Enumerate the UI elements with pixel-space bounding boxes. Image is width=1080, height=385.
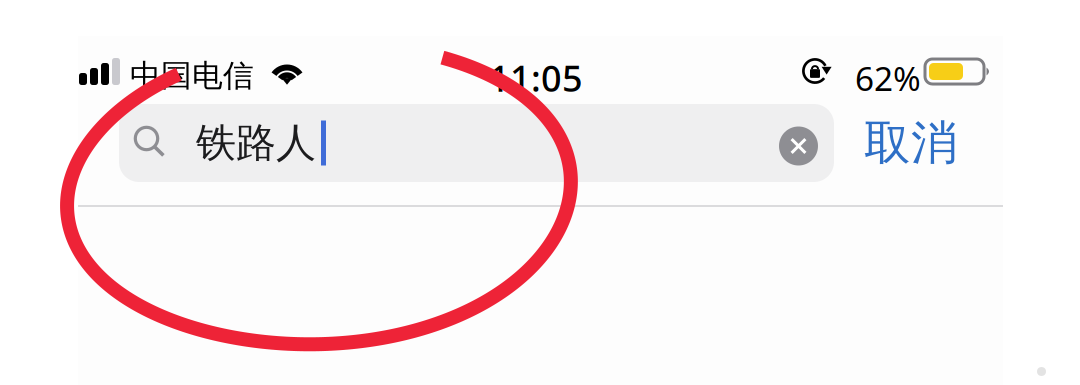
- staticText: 62%: [855, 56, 921, 100]
- staticText: 中国电信: [130, 57, 254, 95]
- staticText: 取消: [864, 114, 958, 172]
- button[interactable]: 取消: [848, 104, 974, 182]
- button[interactable]: 铁路人: [119, 104, 834, 182]
- staticText: 铁路人: [196, 118, 316, 167]
- staticText: 11:05: [489, 54, 583, 102]
